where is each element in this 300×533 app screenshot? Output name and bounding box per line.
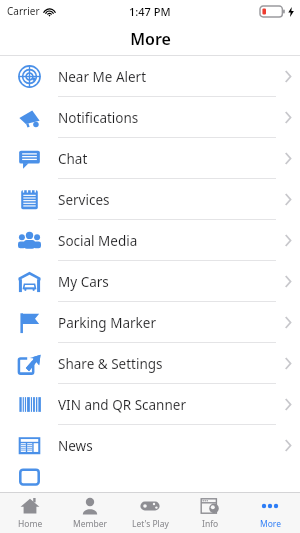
button[interactable]: Info: [180, 493, 240, 533]
staticText: My Cars: [58, 273, 109, 291]
staticText: Carrier: [7, 4, 40, 18]
button[interactable]: More: [240, 493, 300, 533]
button[interactable]: Social Media: [0, 220, 300, 261]
button[interactable]: Parking Marker: [0, 302, 300, 343]
staticText: Member: [73, 518, 107, 530]
staticText: Home: [18, 518, 43, 530]
staticText: Social Media: [58, 232, 138, 250]
staticText: VIN and QR Scanner: [58, 396, 186, 414]
button[interactable]: Services: [0, 179, 300, 220]
staticText: News: [58, 437, 93, 455]
button[interactable]: Share & Settings: [0, 343, 300, 384]
button[interactable]: VIN and QR Scanner: [0, 384, 300, 425]
button[interactable]: News: [0, 425, 300, 466]
staticText: Notifications: [58, 109, 139, 127]
button[interactable]: Near Me Alert: [0, 56, 300, 97]
button[interactable]: My Cars: [0, 261, 300, 302]
button[interactable]: Let's Play: [120, 493, 180, 533]
staticText: More: [260, 518, 281, 530]
staticText: Share & Settings: [58, 355, 163, 373]
button[interactable]: Notifications: [0, 97, 300, 138]
staticText: Let's Play: [132, 518, 169, 530]
staticText: Parking Marker: [58, 314, 156, 332]
staticText: Chat: [58, 150, 88, 168]
staticText: 1:47 PM: [129, 4, 171, 19]
staticText: Services: [58, 191, 110, 209]
staticText: More: [130, 28, 171, 50]
button[interactable]: Chat: [0, 138, 300, 179]
button[interactable]: Home: [0, 493, 60, 533]
staticText: Info: [202, 518, 219, 530]
staticText: Near Me Alert: [58, 68, 147, 86]
button[interactable]: Member: [60, 493, 120, 533]
button[interactable]: [0, 466, 300, 492]
